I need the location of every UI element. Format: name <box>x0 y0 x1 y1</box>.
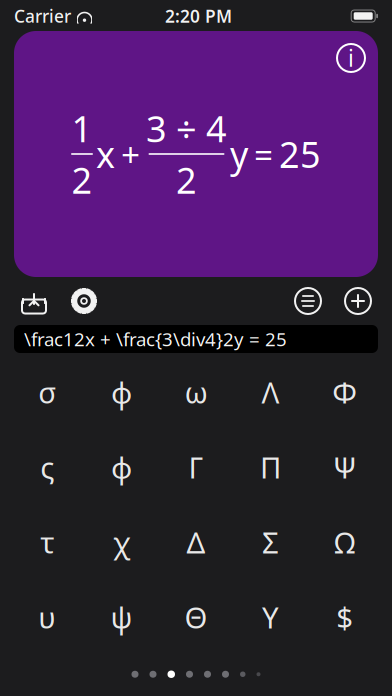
staticText: Ψ <box>333 447 357 486</box>
staticText: Carrier <box>14 4 71 27</box>
staticText: τ <box>40 522 54 561</box>
staticText: Ω <box>334 522 355 561</box>
staticText: y <box>230 130 248 178</box>
button[interactable]: τ <box>10 511 84 573</box>
button[interactable]: φ <box>84 361 159 423</box>
button[interactable]: Add <box>340 283 376 319</box>
staticText: Γ <box>188 447 203 486</box>
staticText: φ <box>111 372 132 411</box>
button[interactable]: Save <box>16 283 52 319</box>
staticText: ω <box>184 372 207 411</box>
staticText: Σ <box>262 522 279 561</box>
staticText: χ <box>113 522 130 561</box>
staticText: σ <box>38 372 56 411</box>
staticText: + <box>121 132 140 176</box>
staticText: 1 <box>71 104 92 152</box>
button[interactable]: Information <box>330 37 372 79</box>
button[interactable]: Φ <box>308 361 382 423</box>
button[interactable]: History <box>290 283 326 319</box>
staticText: 2 <box>176 156 197 204</box>
staticText: i <box>348 43 354 73</box>
staticText: Φ <box>332 372 357 411</box>
button[interactable]: $ <box>308 586 382 648</box>
staticText: ς <box>40 447 54 486</box>
staticText: υ <box>38 597 56 636</box>
button[interactable]: υ <box>10 586 84 648</box>
button[interactable]: Γ <box>159 436 233 498</box>
button[interactable]: φ <box>84 436 159 498</box>
button[interactable]: ς <box>10 436 84 498</box>
staticText: Δ <box>186 522 205 561</box>
staticText: 25 <box>279 130 321 178</box>
button[interactable]: Ω <box>308 511 382 573</box>
button[interactable]: Settings <box>66 283 102 319</box>
button[interactable]: Π <box>233 436 308 498</box>
button[interactable]: \frac12x + \frac{3\div4}2y = 25 <box>14 325 378 353</box>
staticText: Θ <box>184 597 207 636</box>
staticText: φ <box>111 447 132 486</box>
staticText: = <box>254 132 273 176</box>
button[interactable]: Δ <box>159 511 233 573</box>
staticText: Υ <box>262 597 279 636</box>
staticText: 2 <box>71 156 92 204</box>
staticText: 3 ÷ 4 <box>146 104 227 152</box>
staticText: Λ <box>261 372 279 411</box>
button[interactable]: ψ <box>84 586 159 648</box>
button[interactable]: Ψ <box>308 436 382 498</box>
button[interactable]: Σ <box>233 511 308 573</box>
staticText: $ <box>336 597 353 636</box>
staticText: Π <box>260 447 281 486</box>
button[interactable]: χ <box>84 511 159 573</box>
staticText: 2:20 PM <box>165 4 232 27</box>
button[interactable]: Θ <box>159 586 233 648</box>
staticText: \frac12x + \frac{3\div4}2y = 25 <box>24 327 287 351</box>
button[interactable]: Λ <box>233 361 308 423</box>
button[interactable]: Υ <box>233 586 308 648</box>
button[interactable]: σ <box>10 361 84 423</box>
staticText: ψ <box>111 597 133 636</box>
staticText: x <box>96 130 115 178</box>
button[interactable]: ω <box>159 361 233 423</box>
